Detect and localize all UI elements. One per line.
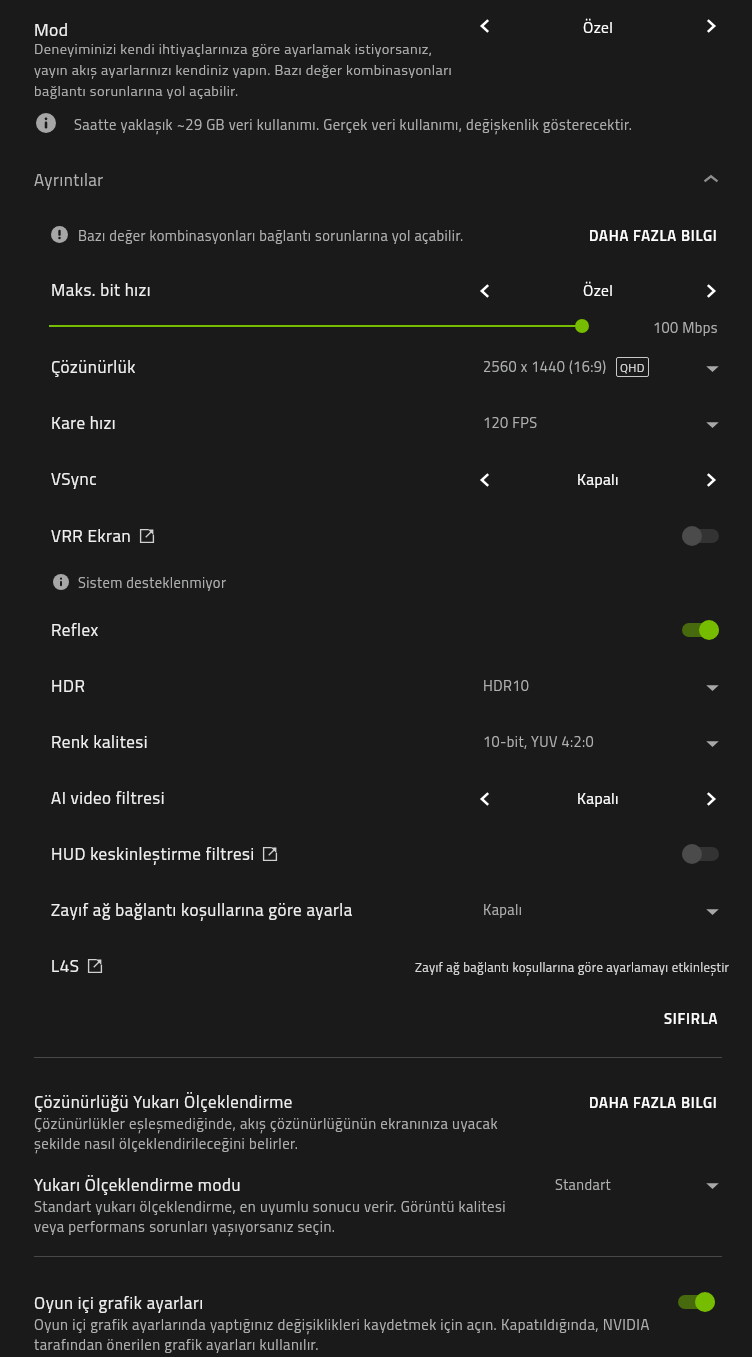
button[interactable]: Maks. bit hızı xyxy=(0,262,752,318)
staticText: HDR xyxy=(51,673,86,699)
staticText: Özel xyxy=(583,278,614,302)
button[interactable]: Mod seç xyxy=(706,1179,719,1192)
button[interactable]: Renk kalitesi xyxy=(0,714,752,770)
staticText: 100 Mbps xyxy=(653,317,718,339)
button[interactable]: HUD keskinleştirme filtresi xyxy=(0,826,752,882)
staticText: Çözünürlüğü Yukarı Ölçeklendirme xyxy=(34,1089,293,1115)
staticText: 120 FPS xyxy=(483,412,538,434)
staticText: Bazı değer kombinasyonları bağlantı soru… xyxy=(78,225,464,247)
button[interactable]: Çözünürlük xyxy=(0,339,752,395)
button[interactable]: L4S xyxy=(0,938,752,994)
staticText: Sistem desteklenmiyor xyxy=(78,572,227,594)
staticText: Çözünürlük xyxy=(51,354,136,380)
staticText: Oyun içi grafik ayarlarında yaptığınız d… xyxy=(34,1313,650,1355)
staticText: Kapalı xyxy=(577,786,619,810)
staticText: Mod xyxy=(34,16,69,43)
button[interactable]: HDR xyxy=(0,658,752,714)
staticText: DAHA FAZLA BILGI xyxy=(589,1091,718,1114)
staticText: Kapalı xyxy=(577,467,619,491)
staticText: 10-bit, YUV 4:2:0 xyxy=(483,731,595,753)
staticText: Zayıf ağ bağlantı koşullarına göre ayarl… xyxy=(415,957,730,976)
button[interactable]: DAHA FAZLA BILGI xyxy=(589,224,718,247)
staticText: Standart xyxy=(555,1174,612,1196)
button[interactable]: Oyun içi grafik ayarları xyxy=(678,1292,715,1312)
button[interactable]: VSync xyxy=(0,451,752,507)
staticText: Ayrıntılar xyxy=(34,167,104,193)
staticText: Reflex xyxy=(51,617,99,643)
staticText: L4S xyxy=(51,953,80,979)
staticText: Deneyiminizi kendi ihtiyaçlarınıza göre … xyxy=(34,38,453,102)
staticText: Kapalı xyxy=(483,899,523,921)
button[interactable]: Reflex xyxy=(0,602,752,658)
staticText: HUD keskinleştirme filtresi xyxy=(51,841,255,867)
staticText: HDR10 xyxy=(483,675,530,697)
button[interactable]: Kare hızı xyxy=(0,395,752,451)
button[interactable]: Sonraki mod xyxy=(700,15,722,37)
staticText: Maks. bit hızı xyxy=(51,277,151,303)
button[interactable]: DAHA FAZLA BILGI xyxy=(589,1091,718,1114)
staticText: QHD xyxy=(620,358,645,376)
staticText: Standart yukarı ölçeklendirme, en uyumlu… xyxy=(34,1195,506,1237)
staticText: VSync xyxy=(51,466,98,492)
button[interactable]: Önceki mod xyxy=(474,15,496,37)
staticText: Saatte yaklaşık ~29 GB veri kullanımı. G… xyxy=(74,113,633,135)
staticText: DAHA FAZLA BILGI xyxy=(589,224,718,247)
staticText: VRR Ekran xyxy=(51,523,132,549)
staticText: Kare hızı xyxy=(51,410,117,436)
staticText: SIFIRLA xyxy=(664,1007,719,1030)
staticText: Özel xyxy=(583,15,614,37)
button[interactable]: AI video filtresi xyxy=(0,770,752,826)
button[interactable]: VRR Ekran xyxy=(0,508,752,564)
staticText: Çözünürlükler eşleşmediğinde, akış çözün… xyxy=(34,1112,499,1154)
staticText: Renk kalitesi xyxy=(51,729,148,755)
staticText: Oyun içi grafik ayarları xyxy=(34,1290,204,1316)
staticText: AI video filtresi xyxy=(51,785,165,811)
staticText: Yukarı Ölçeklendirme modu xyxy=(34,1172,241,1198)
staticText: 2560 x 1440 (16:9) xyxy=(483,356,607,378)
button[interactable]: Ayrıntıları daralt xyxy=(699,167,723,191)
staticText: Zayıf ağ bağlantı koşullarına göre ayarl… xyxy=(51,897,353,923)
button[interactable]: SIFIRLA xyxy=(664,1007,719,1030)
button[interactable]: Zayıf ağ bağlantı koşullarına göre ayarl… xyxy=(0,882,752,938)
